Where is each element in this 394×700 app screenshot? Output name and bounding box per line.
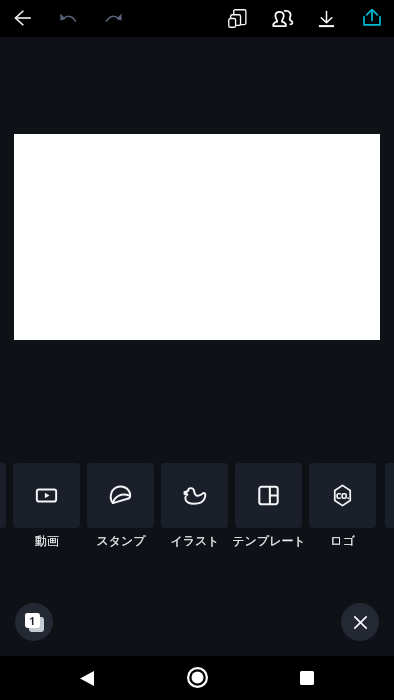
button[interactable]: Back — [5, 1, 40, 34]
button[interactable]: Undo — [52, 3, 84, 33]
button[interactable]: Redo — [98, 3, 130, 33]
button[interactable]: Recents — [287, 658, 327, 698]
button[interactable]: Close — [341, 603, 379, 641]
staticText: 1 — [29, 613, 36, 628]
button[interactable]: Pages — [15, 603, 53, 641]
button[interactable]: Home — [177, 657, 217, 697]
staticText: スタンプ — [96, 533, 146, 548]
staticText: テンプレート — [232, 533, 306, 548]
staticText: CO. — [336, 490, 350, 501]
staticText: 動画 — [35, 533, 59, 548]
button[interactable]: スタンプ — [67, 463, 174, 548]
button[interactable]: テンプレート — [215, 463, 322, 548]
button[interactable]: Download — [311, 3, 341, 34]
button[interactable]: Share — [356, 2, 387, 34]
staticText: イラスト — [170, 533, 220, 548]
button[interactable]: Resize — [222, 3, 252, 34]
button[interactable]: 動画 — [0, 463, 100, 548]
button[interactable]: CO. — [289, 463, 394, 548]
button[interactable]: Collaborators — [267, 3, 297, 34]
button[interactable]: イラスト — [141, 463, 248, 548]
button[interactable]: Back — [67, 658, 107, 698]
staticText: ロゴ — [330, 533, 355, 548]
